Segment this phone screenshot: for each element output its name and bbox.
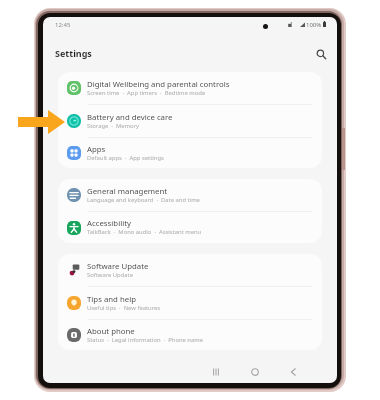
staticText: Battery and device care xyxy=(87,112,173,123)
staticText: Software Update xyxy=(87,271,133,279)
staticText: General management xyxy=(87,186,168,197)
button[interactable]: Accessibility xyxy=(58,212,322,243)
staticText: About phone xyxy=(87,326,135,337)
staticText: Software Update xyxy=(87,261,149,272)
button[interactable]: Recents xyxy=(206,362,226,382)
staticText: Status · Legal information · Phone name xyxy=(87,336,204,344)
staticText: Accessibility xyxy=(87,218,131,229)
staticText: Apps xyxy=(87,144,106,155)
staticText: Default apps · App settings xyxy=(87,154,164,162)
staticText: TalkBack · Mono audio · Assistant menu xyxy=(87,228,202,236)
staticText: Useful tips · New features xyxy=(87,304,161,312)
button[interactable]: Apps xyxy=(58,138,322,168)
button[interactable]: Tips and help xyxy=(58,287,322,319)
button[interactable]: Home xyxy=(245,362,265,382)
staticText: Language and keyboard · Date and time xyxy=(87,196,200,204)
button[interactable]: Battery and device care xyxy=(58,105,322,137)
button[interactable]: Digital Wellbeing and parental controls xyxy=(58,72,322,104)
button[interactable]: Back xyxy=(283,362,303,382)
staticText: 100% xyxy=(306,21,322,29)
staticText: Settings xyxy=(55,47,92,59)
staticText: Screen time · App timers · Bedtime mode xyxy=(87,89,206,97)
staticText: Digital Wellbeing and parental controls xyxy=(87,79,230,90)
button[interactable]: General management xyxy=(58,179,322,211)
button[interactable]: Software Update xyxy=(58,254,322,286)
button[interactable]: Search xyxy=(311,44,333,66)
staticText: Storage · Memory xyxy=(87,122,139,130)
button[interactable]: About phone xyxy=(58,320,322,350)
staticText: 12:45 xyxy=(55,21,71,29)
staticText: Tips and help xyxy=(87,294,136,305)
